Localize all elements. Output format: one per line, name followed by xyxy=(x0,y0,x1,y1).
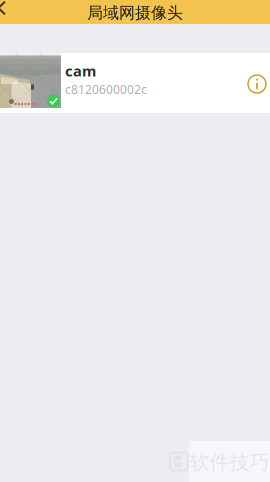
staticText: c8120600002c xyxy=(65,81,147,97)
staticText: cam xyxy=(65,61,96,80)
button[interactable]: Back xyxy=(0,0,20,24)
button[interactable]: cam xyxy=(0,53,270,113)
staticText: 局域网摄像头 xyxy=(87,3,183,23)
staticText: 软件技巧 xyxy=(189,450,269,475)
